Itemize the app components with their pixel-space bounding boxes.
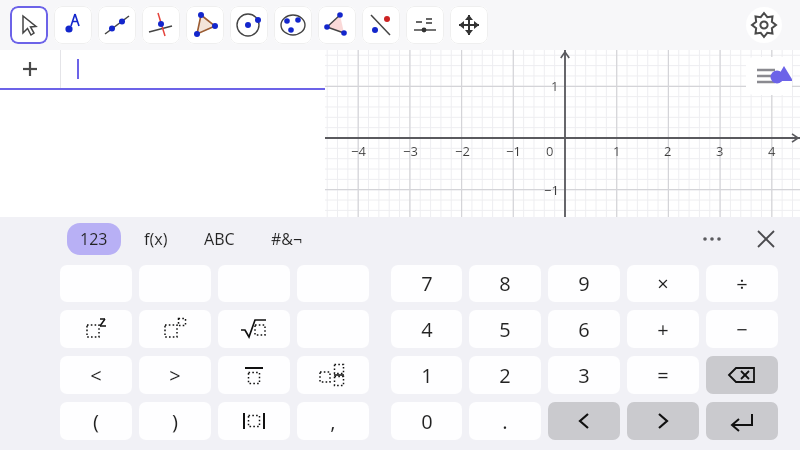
button[interactable]: 8 bbox=[469, 265, 541, 302]
staticText: 3 bbox=[716, 142, 724, 160]
button[interactable]: − bbox=[706, 310, 778, 348]
button[interactable]: Mixed number bbox=[297, 356, 369, 394]
staticText: 7 bbox=[421, 270, 433, 297]
staticText: 2 bbox=[664, 142, 672, 160]
staticText: × bbox=[657, 270, 669, 297]
staticText: −1 bbox=[544, 181, 559, 199]
staticText: 1 bbox=[421, 362, 433, 389]
button[interactable]: Settings bbox=[746, 7, 782, 43]
button[interactable]: Backspace bbox=[706, 356, 778, 394]
staticText: −2 bbox=[455, 142, 470, 160]
staticText: > bbox=[169, 362, 181, 389]
staticText: 123 bbox=[80, 228, 108, 250]
button[interactable]: ABC bbox=[191, 223, 248, 255]
staticText: ) bbox=[172, 408, 178, 435]
staticText: + bbox=[657, 316, 669, 343]
button[interactable]: Style bar bbox=[746, 57, 792, 95]
button[interactable]: ) bbox=[139, 402, 211, 440]
staticText: 6 bbox=[578, 316, 590, 343]
button[interactable] bbox=[61, 50, 325, 88]
button[interactable]: Point tool bbox=[54, 6, 92, 44]
button[interactable]: Angle tool bbox=[318, 6, 356, 44]
staticText: ABC bbox=[204, 228, 235, 250]
button[interactable]: Pan tool bbox=[450, 6, 488, 44]
staticText: −3 bbox=[403, 142, 418, 160]
button[interactable]: Circle tool bbox=[230, 6, 268, 44]
button[interactable]: + bbox=[627, 310, 699, 348]
button[interactable]: #&¬ bbox=[258, 223, 316, 255]
button[interactable]: . bbox=[469, 402, 541, 440]
button[interactable]: 6 bbox=[548, 310, 620, 348]
button[interactable]: Square root bbox=[218, 310, 290, 348]
button[interactable]: ( bbox=[60, 402, 132, 440]
button[interactable]: Square bbox=[60, 310, 132, 348]
button[interactable]: Line tool bbox=[98, 6, 136, 44]
button[interactable]: 1 bbox=[391, 356, 462, 394]
button[interactable]: × bbox=[627, 265, 699, 302]
button[interactable]: Fraction bbox=[218, 356, 290, 394]
staticText: 4 bbox=[421, 316, 433, 343]
staticText: 9 bbox=[578, 270, 590, 297]
staticText: 2 bbox=[499, 362, 511, 389]
button[interactable]: Reflect tool bbox=[362, 6, 400, 44]
staticText: −4 bbox=[351, 142, 366, 160]
button[interactable]: Right bbox=[627, 402, 699, 440]
button[interactable]: 0 bbox=[391, 402, 462, 440]
button[interactable]: Perpendicular line bbox=[142, 6, 180, 44]
button[interactable]: Left bbox=[548, 402, 620, 440]
button[interactable]: 123 bbox=[67, 223, 121, 255]
button[interactable]: 7 bbox=[391, 265, 462, 302]
staticText: ( bbox=[93, 408, 99, 435]
staticText: = bbox=[657, 362, 669, 389]
button[interactable]: , bbox=[297, 402, 369, 440]
button[interactable]: Move tool bbox=[10, 6, 48, 44]
staticText: 1 bbox=[613, 142, 621, 160]
button[interactable]: < bbox=[60, 356, 132, 394]
staticText: 4 bbox=[768, 142, 776, 160]
button[interactable]: Power bbox=[139, 310, 211, 348]
staticText: 3 bbox=[578, 362, 590, 389]
button[interactable]: 4 bbox=[391, 310, 462, 348]
button[interactable]: = bbox=[627, 356, 699, 394]
button[interactable]: Slider tool bbox=[406, 6, 444, 44]
button[interactable]: ÷ bbox=[706, 265, 778, 302]
staticText: 8 bbox=[499, 270, 511, 297]
button[interactable]: 9 bbox=[548, 265, 620, 302]
staticText: #&¬ bbox=[271, 228, 303, 250]
button[interactable]: Close keyboard bbox=[746, 219, 786, 259]
button[interactable]: 5 bbox=[469, 310, 541, 348]
staticText: < bbox=[90, 362, 102, 389]
staticText: , bbox=[330, 408, 336, 435]
button[interactable]: Absolute value bbox=[218, 402, 290, 440]
staticText: f(x) bbox=[144, 228, 168, 250]
staticText: 5 bbox=[499, 316, 511, 343]
button[interactable]: Conic tool bbox=[274, 6, 312, 44]
staticText: −1 bbox=[506, 142, 521, 160]
staticText: − bbox=[736, 316, 748, 343]
staticText: 1 bbox=[551, 77, 559, 95]
button[interactable]: Polygon tool bbox=[186, 6, 224, 44]
button[interactable]: f(x) bbox=[131, 223, 181, 255]
button[interactable]: More options bbox=[692, 219, 732, 259]
staticText: . bbox=[502, 408, 508, 435]
staticText: 0 bbox=[546, 142, 554, 160]
button[interactable]: 2 bbox=[469, 356, 541, 394]
button[interactable]: Add row bbox=[0, 50, 60, 88]
staticText: 0 bbox=[421, 408, 433, 435]
button[interactable]: 3 bbox=[548, 356, 620, 394]
button[interactable]: Enter bbox=[706, 402, 778, 440]
button[interactable]: > bbox=[139, 356, 211, 394]
staticText: ÷ bbox=[736, 270, 748, 297]
